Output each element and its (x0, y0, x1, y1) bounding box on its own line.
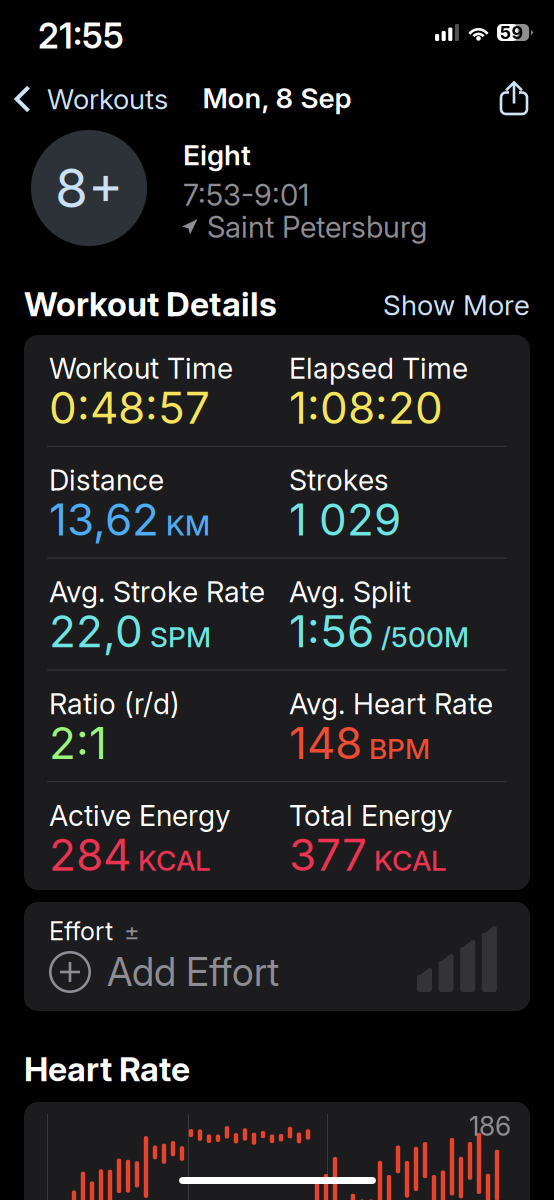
button[interactable]: Share (0, 0, 554, 1200)
staticText: 1 029 (289, 493, 401, 546)
staticText: 7:53-9:01 (183, 177, 309, 213)
staticText: Workout Details (24, 284, 277, 324)
staticText: 2:1 (49, 716, 107, 770)
staticText: Avg. Stroke Rate (49, 575, 265, 609)
staticText: ± (124, 917, 140, 946)
staticText: Elapsed Time (289, 351, 468, 386)
staticText: 148 (289, 716, 362, 770)
staticText: KCAL (374, 844, 447, 878)
button[interactable]: Workouts (0, 0, 554, 1200)
staticText: Strokes (289, 463, 389, 497)
staticText: Workout Time (49, 351, 233, 386)
staticText: 284 (49, 828, 131, 881)
staticText: Eight (183, 138, 251, 172)
staticText: Mon, 8 Sep (202, 81, 351, 115)
staticText: SPM (150, 620, 211, 654)
staticText: Avg. Heart Rate (289, 686, 493, 721)
staticText: Ratio (r/d) (49, 686, 180, 721)
staticText: 59 (500, 22, 524, 43)
button[interactable]: Show More (0, 0, 554, 1200)
staticText: Workouts (47, 82, 168, 116)
staticText: Add Effort (107, 949, 279, 995)
staticText: 22,0 (49, 605, 143, 658)
staticText: Saint Petersburg (207, 209, 427, 245)
staticText: Heart Rate (24, 1049, 190, 1089)
staticText: 1:08:20 (289, 381, 443, 434)
staticText: 21:55 (38, 15, 124, 57)
staticText: KCAL (138, 844, 211, 878)
staticText: 1:56 (289, 605, 374, 658)
button[interactable]: Effort (0, 0, 554, 1200)
staticText: Avg. Split (289, 575, 411, 609)
staticText: Active Energy (49, 798, 231, 833)
staticText: /500M (381, 620, 469, 654)
staticText: BPM (369, 732, 430, 766)
staticText: 186 (469, 1110, 511, 1142)
staticText: 377 (289, 828, 367, 881)
staticText: 0:48:57 (49, 381, 210, 434)
staticText: KM (166, 508, 210, 542)
staticText: Distance (49, 463, 164, 497)
staticText: Effort (49, 916, 113, 946)
staticText: Total Energy (289, 798, 453, 833)
staticText: Show More (383, 288, 530, 322)
staticText: 8+ (55, 156, 123, 220)
staticText: 13,62 (49, 493, 159, 546)
